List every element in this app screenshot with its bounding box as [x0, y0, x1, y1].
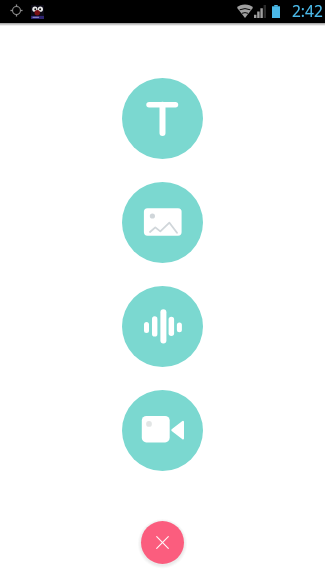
button[interactable]: Close [138, 518, 187, 567]
button[interactable]: Video [122, 390, 203, 471]
staticText: 2:42 [292, 0, 323, 21]
button[interactable]: Photo [122, 182, 203, 263]
button[interactable]: Text [122, 78, 203, 159]
button[interactable]: Audio [122, 286, 203, 367]
